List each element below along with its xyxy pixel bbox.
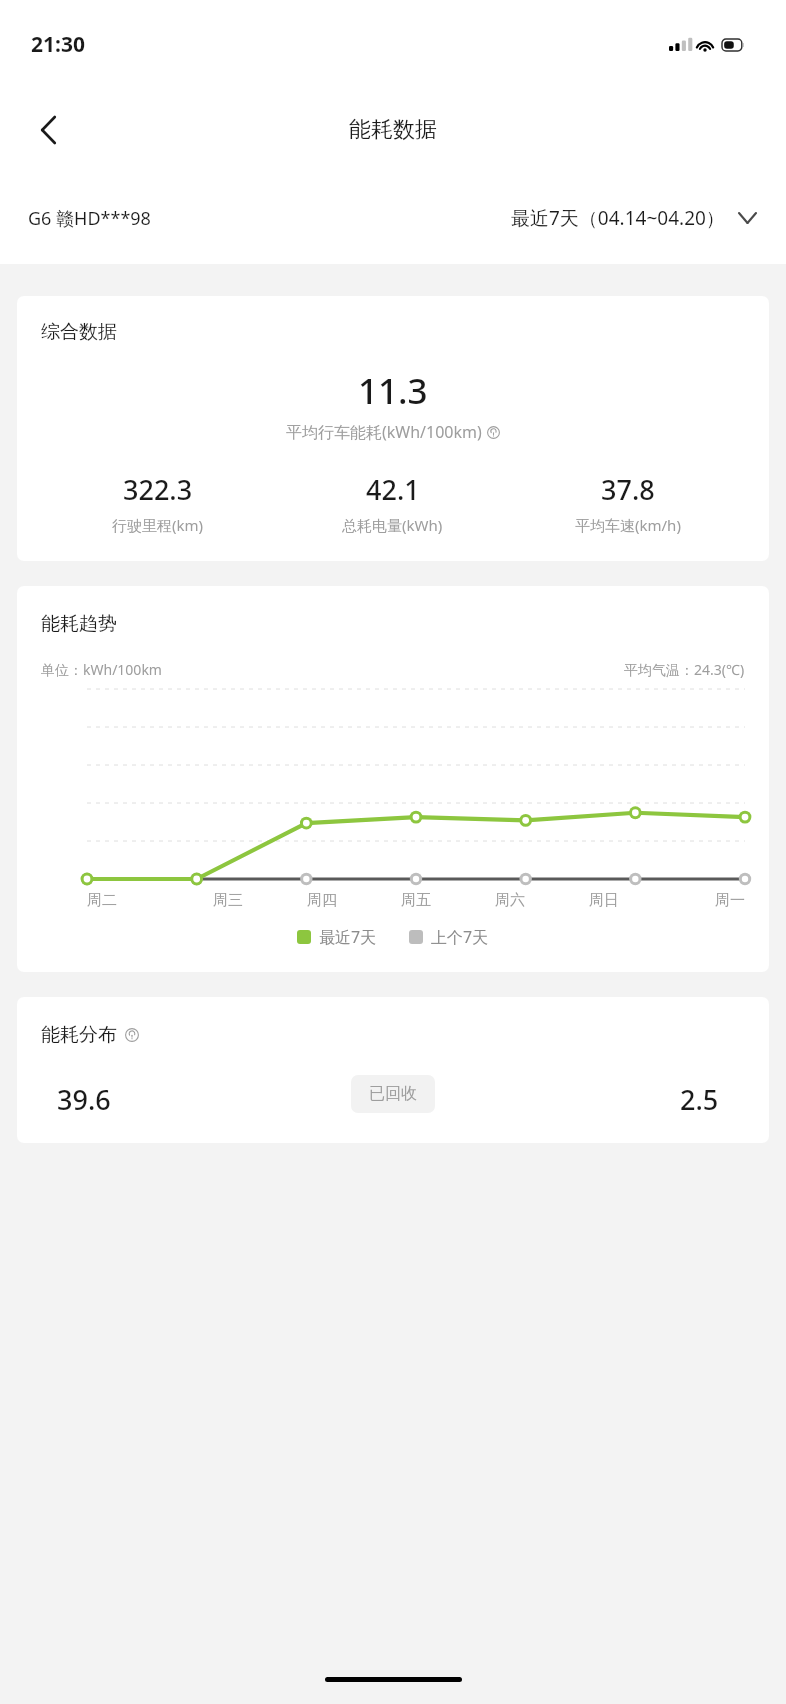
staticText: 已回收 [369,1084,417,1104]
staticText: 平均气温：24.3(℃) [624,660,745,679]
staticText: 能耗趋势 [41,612,117,636]
staticText: 综合数据 [41,320,117,344]
staticText: 周四 [307,891,337,910]
staticText: 能耗分布 [41,1023,117,1047]
staticText: G6 赣HD***98 [28,206,151,231]
staticText: 42.1 [366,471,420,508]
staticText: 单位：kWh/100km [41,660,162,679]
button[interactable]: Back [20,102,76,158]
button[interactable]: 能耗分布 [17,997,769,1143]
staticText: 最近7天 [319,926,377,948]
staticText: 周日 [589,891,619,910]
staticText: 平均车速(km/h) [575,515,681,535]
staticText: 周三 [213,891,243,910]
staticText: 总耗电量(kWh) [342,515,443,535]
staticText: 37.8 [601,471,655,508]
button[interactable]: 能耗趋势 [17,586,769,972]
staticText: 平均行车能耗(kWh/100km) [286,421,482,443]
staticText: 周一 [715,891,745,910]
button[interactable]: 最近7天 [295,924,379,950]
staticText: 上个7天 [431,926,489,948]
staticText: 周五 [401,891,431,910]
staticText: 最近7天（04.14~04.20） [511,205,725,231]
staticText: 2.5 [680,1081,719,1118]
staticText: 能耗数据 [349,116,437,144]
staticText: 行驶里程(km) [112,515,204,535]
staticText: 周二 [87,891,117,910]
staticText: 21:30 [31,30,85,59]
staticText: 周六 [495,891,525,910]
button[interactable]: 最近7天（04.14~04.20） [507,199,760,237]
button[interactable]: 综合数据 [17,296,769,561]
staticText: 322.3 [123,471,193,508]
staticText: 39.6 [57,1081,111,1118]
staticText: 11.3 [358,367,428,415]
button[interactable]: 上个7天 [407,924,491,950]
